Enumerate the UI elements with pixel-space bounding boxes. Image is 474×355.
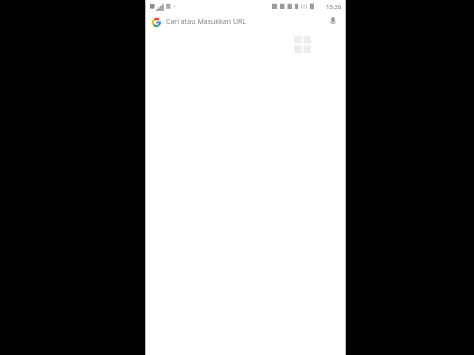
button[interactable]: Cari atau Masukkan URL bbox=[146, 12, 345, 32]
staticText: Cari atau Masukkan URL bbox=[166, 17, 326, 27]
button[interactable]: Voice search bbox=[326, 14, 340, 30]
button[interactable]: Shortcuts grid bbox=[294, 36, 311, 53]
staticText: 15:26 bbox=[326, 3, 342, 11]
